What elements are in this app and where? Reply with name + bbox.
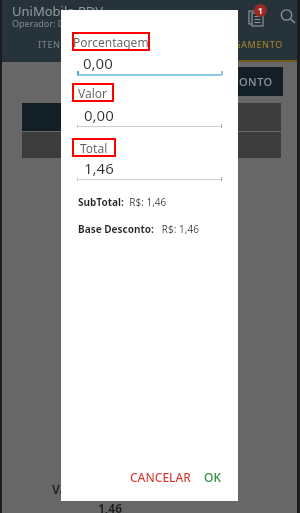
- staticText: UniMobile PDV: [12, 2, 103, 20]
- staticText: OK: [204, 469, 221, 485]
- staticText: R$: 1,46: [124, 195, 167, 209]
- staticText: 1,46: [98, 500, 123, 513]
- staticText: Porcentagem: [73, 34, 149, 50]
- staticText: DESCONTO: [210, 74, 273, 89]
- staticText: 0,00: [84, 105, 114, 125]
- staticText: 0,00: [83, 53, 113, 73]
- staticText: Valor a pagar: [52, 481, 132, 497]
- button[interactable]: PAGAMENTO: [152, 38, 300, 60]
- staticText: ITENS: [38, 38, 67, 50]
- staticText: R$: 1,46: [154, 222, 199, 236]
- staticText: Valor: [78, 85, 108, 101]
- staticText: SubTotal:: [78, 195, 124, 209]
- button[interactable]: DESCONTO: [169, 67, 283, 96]
- staticText: Operador: DEMO: [12, 17, 85, 29]
- staticText: Total: [80, 140, 108, 156]
- button[interactable]: OK: [199, 464, 226, 490]
- staticText: 1: [258, 5, 263, 16]
- staticText: Base Desconto:: [78, 222, 154, 236]
- button[interactable]: Orders: [245, 0, 275, 30]
- staticText: CANCELAR: [130, 469, 191, 485]
- staticText: 1,46: [84, 158, 114, 178]
- staticText: PAGAMENTO: [222, 38, 283, 50]
- button[interactable]: Search: [276, 2, 300, 28]
- button[interactable]: CANCELAR: [125, 464, 196, 490]
- button[interactable]: ITENS: [2, 38, 152, 60]
